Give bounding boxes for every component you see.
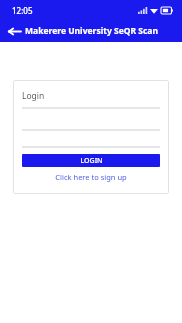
staticText: 12:05 — [12, 5, 33, 16]
staticText: Login — [22, 90, 45, 102]
staticText: LOGIN — [80, 156, 103, 166]
button[interactable]: LOGIN — [22, 154, 160, 167]
button[interactable]: Back — [4, 21, 24, 41]
staticText: Click here to sign up — [55, 172, 127, 182]
button[interactable]: Click here to sign up — [22, 170, 160, 184]
staticText: Makerere University SeQR Scan — [25, 25, 158, 37]
